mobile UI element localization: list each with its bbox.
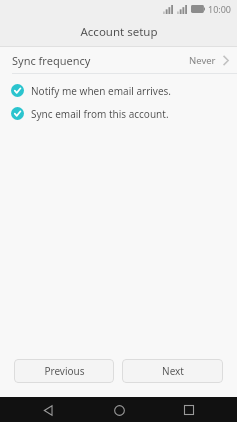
staticText: Notify me when email arrives.: [31, 84, 172, 98]
button[interactable]: Home: [107, 398, 131, 422]
staticText: 10:00: [208, 3, 232, 15]
button[interactable]: Sync email from this account.: [0, 102, 237, 125]
staticText: Sync frequency: [12, 53, 91, 68]
button[interactable]: Sync frequency: [0, 47, 237, 73]
staticText: Sync email from this account.: [31, 107, 169, 121]
button[interactable]: Back: [36, 398, 60, 422]
button[interactable]: Next: [122, 359, 223, 383]
button[interactable]: Recent apps: [177, 398, 201, 422]
button[interactable]: Previous: [14, 359, 114, 383]
staticText: Account setup: [80, 24, 158, 40]
staticText: Previous: [44, 364, 85, 378]
staticText: Never: [189, 54, 216, 67]
staticText: Next: [162, 364, 184, 378]
button[interactable]: Notify me when email arrives.: [0, 79, 237, 102]
